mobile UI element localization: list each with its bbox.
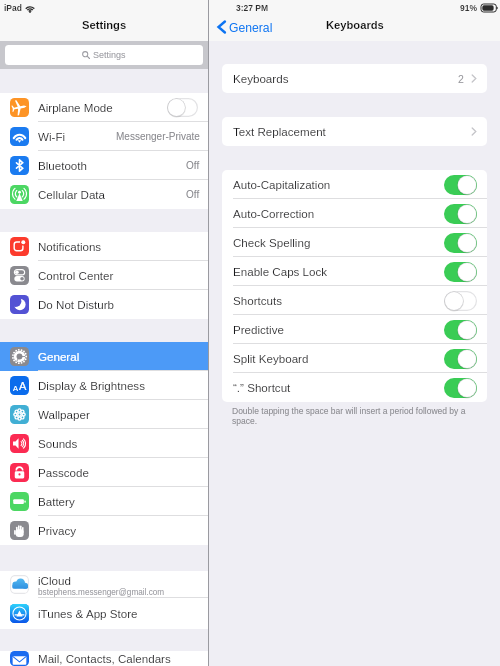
staticText: Cellular Data <box>38 188 106 201</box>
staticText: Double tapping the space bar will insert… <box>232 406 478 426</box>
staticText: A <box>19 380 27 392</box>
button[interactable]: Sounds <box>0 429 208 458</box>
button[interactable]: Airplane Mode <box>0 93 208 122</box>
button[interactable]: Do Not Disturb <box>0 290 208 319</box>
staticText: 2 <box>458 73 464 85</box>
button[interactable]: Auto-Correction <box>222 199 487 228</box>
button[interactable]: Switch on <box>444 262 477 282</box>
staticText: Privacy <box>38 524 77 537</box>
staticText: General <box>38 350 80 363</box>
staticText: Split Keyboard <box>233 352 444 365</box>
button[interactable]: Text Replacement <box>222 117 487 146</box>
button[interactable]: Battery <box>0 487 208 516</box>
button[interactable]: Check Spelling <box>222 228 487 257</box>
staticText: Sounds <box>38 437 78 450</box>
button[interactable]: Switch on <box>444 175 477 195</box>
staticText: Messenger-Private <box>116 131 200 142</box>
button[interactable]: iCloud <box>0 571 208 598</box>
staticText: Settings <box>93 50 126 60</box>
button[interactable]: iTunes & App Store <box>0 598 208 629</box>
button[interactable]: Settings <box>5 45 203 65</box>
staticText: Notifications <box>38 240 102 253</box>
staticText: Control Center <box>38 269 114 282</box>
button[interactable]: General <box>217 20 273 34</box>
staticText: 3:27 PM <box>236 3 269 12</box>
button[interactable]: Predictive <box>222 315 487 344</box>
button[interactable]: Cellular Data <box>0 180 208 209</box>
staticText: Enable Caps Lock <box>233 265 444 278</box>
staticText: Display & Brightness <box>38 379 145 392</box>
button[interactable]: Switch on <box>444 378 477 398</box>
button[interactable]: Privacy <box>0 516 208 545</box>
staticText: Bluetooth <box>38 159 87 172</box>
staticText: Settings <box>82 19 127 32</box>
button[interactable]: Shortcuts <box>222 286 487 315</box>
button[interactable]: Switch on <box>444 204 477 224</box>
staticText: Off <box>186 160 200 171</box>
staticText: iPad <box>4 3 22 12</box>
staticText: Battery <box>38 495 75 508</box>
staticText: 91% <box>460 3 478 12</box>
button[interactable]: Split Keyboard <box>222 344 487 373</box>
button[interactable]: Mail, Contacts, Calendars <box>0 651 208 666</box>
button[interactable]: Wi-Fi <box>0 122 208 151</box>
staticText: Airplane Mode <box>38 101 113 114</box>
button[interactable]: Wallpaper <box>0 400 208 429</box>
staticText: Predictive <box>233 323 444 336</box>
staticText: iTunes & App Store <box>38 607 138 620</box>
staticText: Wallpaper <box>38 408 90 421</box>
button[interactable]: Switch on <box>444 233 477 253</box>
staticText: Passcode <box>38 466 89 479</box>
staticText: bstephens.messenger@gmail.com <box>38 588 165 597</box>
button[interactable]: Switch off <box>444 291 477 311</box>
staticText: Check Spelling <box>233 236 444 249</box>
staticText: Auto-Correction <box>233 207 444 220</box>
staticText: Keyboards <box>233 72 458 85</box>
staticText: Shortcuts <box>233 294 444 307</box>
staticText: Do Not Disturb <box>38 298 115 311</box>
button[interactable]: Control Center <box>0 261 208 290</box>
staticText: Auto-Capitalization <box>233 178 444 191</box>
button[interactable]: Auto-Capitalization <box>222 170 487 199</box>
button[interactable]: Switch on <box>444 349 477 369</box>
button[interactable]: Notifications <box>0 232 208 261</box>
button[interactable]: A <box>0 371 208 400</box>
staticText: “.” Shortcut <box>233 381 444 394</box>
staticText: A <box>13 384 19 392</box>
button[interactable]: Passcode <box>0 458 208 487</box>
button[interactable]: “.” Shortcut <box>222 373 487 402</box>
button[interactable]: Keyboards <box>222 64 487 93</box>
staticText: Mail, Contacts, Calendars <box>38 652 171 665</box>
button[interactable]: General <box>0 342 208 371</box>
button[interactable]: Bluetooth <box>0 151 208 180</box>
staticText: iCloud <box>38 574 71 587</box>
button[interactable]: Enable Caps Lock <box>222 257 487 286</box>
staticText: Text Replacement <box>233 125 471 138</box>
button[interactable]: Switch off <box>167 98 198 117</box>
staticText: General <box>229 21 273 35</box>
staticText: Keyboards <box>326 19 384 32</box>
staticText: Wi-Fi <box>38 130 66 143</box>
staticText: Off <box>186 189 200 200</box>
button[interactable]: Switch on <box>444 320 477 340</box>
